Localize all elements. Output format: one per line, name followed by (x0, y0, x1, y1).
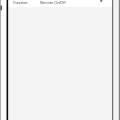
staticText: Remote On/Off (40, 0, 66, 5)
button[interactable]: Function (0, 0, 113, 7)
staticText: Function (13, 0, 27, 5)
